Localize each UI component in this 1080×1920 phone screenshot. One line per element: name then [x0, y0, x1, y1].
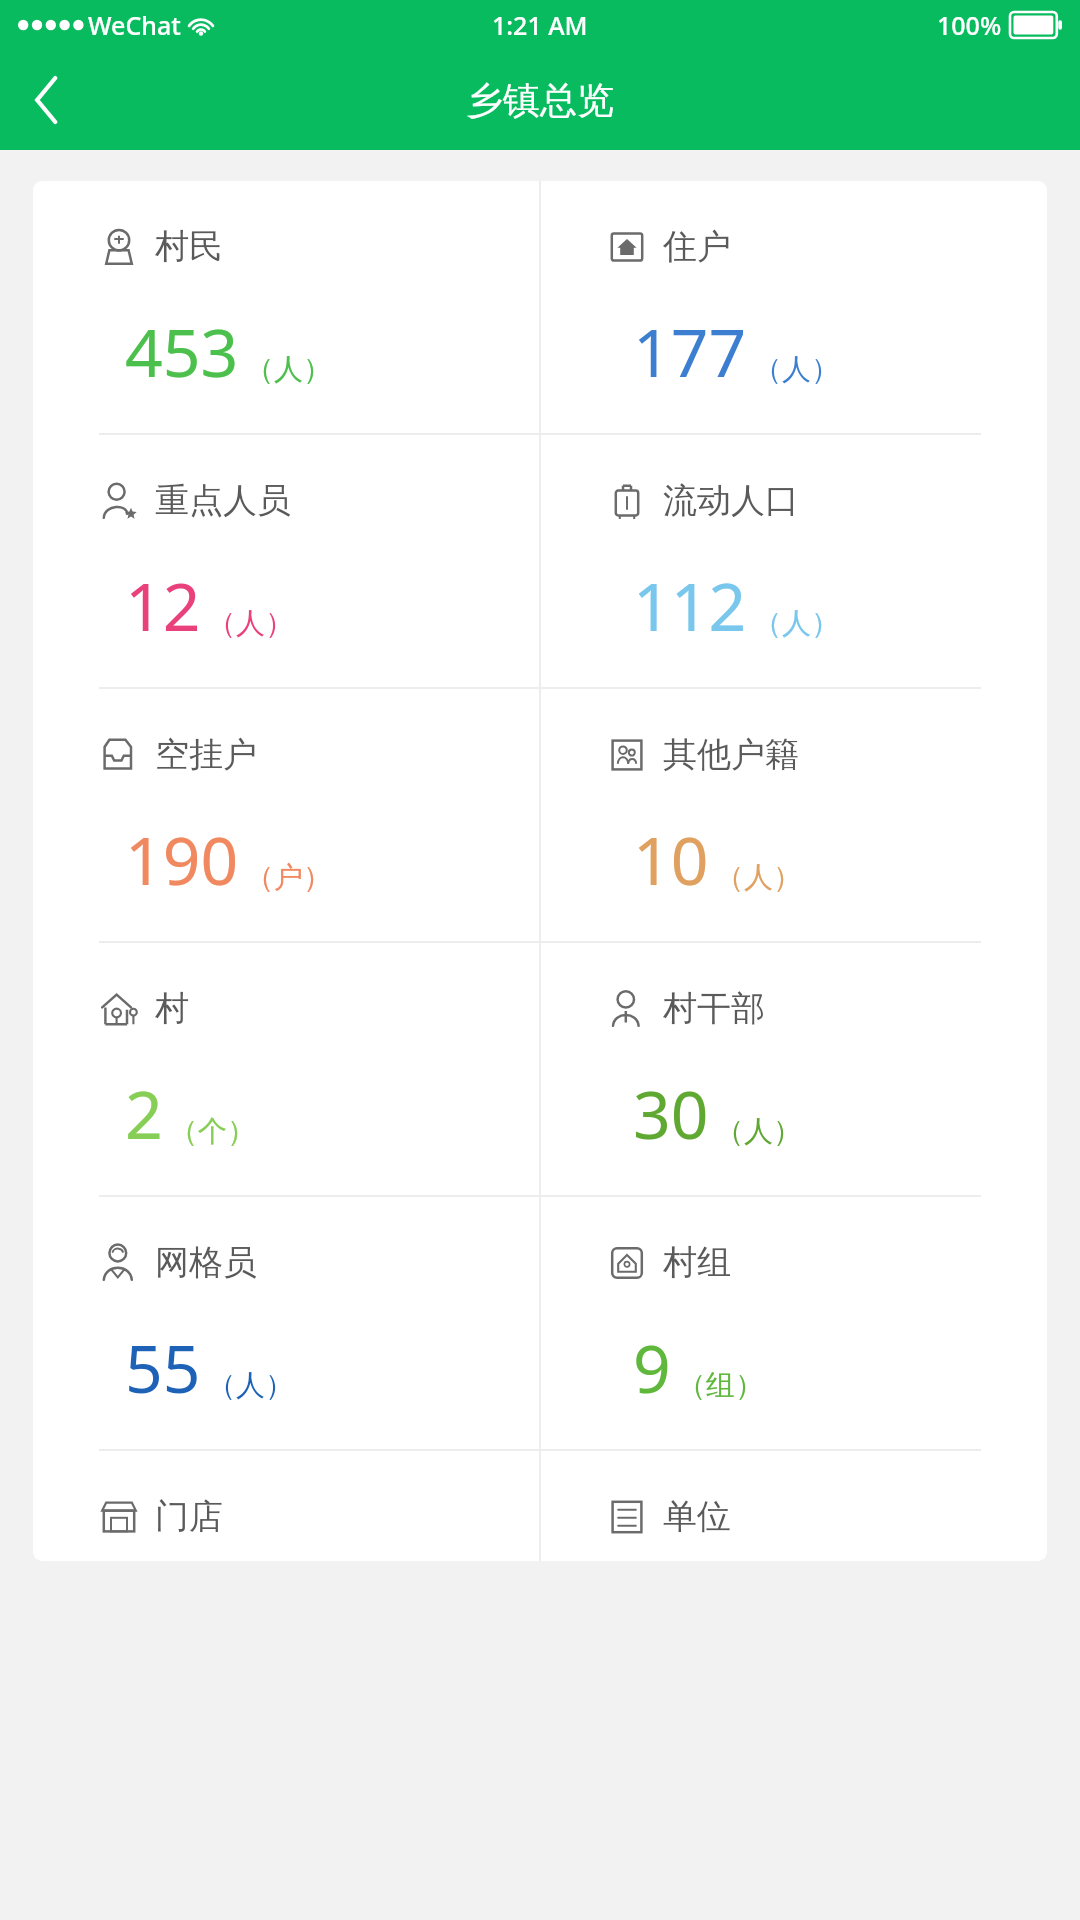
button[interactable]: 重点人员 [33, 435, 539, 687]
button[interactable]: 网格员 [33, 1197, 539, 1449]
staticText: 流动人口 [663, 479, 799, 522]
staticText: 门店 [155, 1495, 223, 1538]
staticText: WeChat [88, 8, 181, 42]
button[interactable]: Back [14, 67, 80, 133]
staticText: （组） [677, 1367, 764, 1404]
staticText: 空挂户 [155, 733, 257, 776]
staticText: （人） [715, 859, 802, 896]
staticText: 9 [633, 1322, 671, 1412]
staticText: 重点人员 [155, 479, 291, 522]
staticText: 30 [633, 1068, 709, 1158]
button[interactable]: 空挂户 [33, 689, 539, 941]
button[interactable]: 村组 [541, 1197, 1047, 1449]
staticText: 10 [633, 814, 709, 904]
staticText: 村干部 [663, 987, 765, 1030]
staticText: 村 [155, 987, 189, 1030]
button[interactable]: 单位 [541, 1451, 1047, 1561]
staticText: （户） [245, 859, 332, 896]
staticText: 村民 [155, 225, 223, 268]
staticText: （人） [753, 605, 840, 642]
staticText: 单位 [663, 1495, 731, 1538]
button[interactable]: 门店 [33, 1451, 539, 1561]
staticText: （人） [715, 1113, 802, 1150]
staticText: （人） [207, 1367, 294, 1404]
staticText: 55 [125, 1322, 201, 1412]
button[interactable]: 村 [33, 943, 539, 1195]
button[interactable]: 流动人口 [541, 435, 1047, 687]
staticText: 住户 [663, 225, 731, 268]
staticText: 112 [633, 560, 747, 650]
staticText: 177 [633, 306, 747, 396]
staticText: （人） [753, 351, 840, 388]
staticText: （个） [169, 1113, 256, 1150]
staticText: 1:21 AM [492, 8, 588, 42]
staticText: （人） [207, 605, 294, 642]
staticText: 190 [125, 814, 239, 904]
staticText: 12 [125, 560, 201, 650]
button[interactable]: 住户 [541, 181, 1047, 433]
staticText: 乡镇总览 [466, 77, 614, 124]
staticText: 其他户籍 [663, 733, 799, 776]
button[interactable]: 村干部 [541, 943, 1047, 1195]
staticText: 100% [937, 8, 1002, 42]
staticText: 453 [125, 306, 239, 396]
staticText: 村组 [663, 1241, 731, 1284]
staticText: 网格员 [155, 1241, 257, 1284]
button[interactable]: 村民 [33, 181, 539, 433]
staticText: （人） [245, 351, 332, 388]
staticText: 2 [125, 1068, 163, 1158]
button[interactable]: 其他户籍 [541, 689, 1047, 941]
